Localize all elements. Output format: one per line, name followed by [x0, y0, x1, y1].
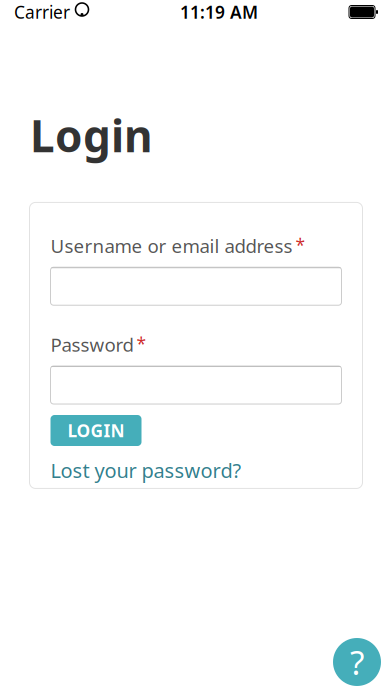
staticText: 11:19 AM	[180, 0, 258, 23]
staticText: *	[136, 332, 146, 355]
button[interactable]: Lost your password?	[50, 454, 241, 487]
button[interactable]: Help	[333, 638, 381, 686]
staticText: Login	[30, 106, 153, 164]
staticText: ?	[350, 640, 364, 684]
staticText: Carrier	[14, 0, 70, 23]
staticText: Lost your password?	[50, 457, 241, 484]
staticText: *	[295, 233, 305, 256]
staticText: LOGIN	[67, 419, 124, 442]
button[interactable]: LOGIN	[50, 415, 141, 446]
staticText: Password	[50, 332, 133, 357]
staticText: Username or email address	[50, 233, 292, 258]
